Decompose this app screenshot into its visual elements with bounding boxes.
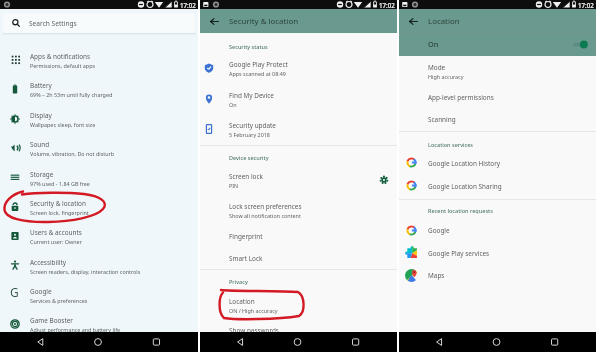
button[interactable]: Storage <box>0 162 198 192</box>
button[interactable]: Accessibility <box>0 251 198 281</box>
button[interactable]: Show passwords <box>200 320 397 342</box>
other: Location toggle <box>568 39 590 50</box>
button[interactable]: Maps <box>399 265 596 288</box>
button[interactable]: Search Settings <box>3 13 195 33</box>
button[interactable]: Screen lock <box>200 165 397 195</box>
staticText: Game Booster <box>30 316 73 325</box>
staticText: ON / High accuracy <box>229 307 278 314</box>
staticText: Adjust performance and battery life <box>30 326 121 333</box>
staticText: Scanning <box>428 115 456 124</box>
staticText: Sound <box>30 140 50 149</box>
button[interactable]: Lock screen preferences <box>200 195 397 225</box>
staticText: Device security <box>229 154 269 161</box>
staticText: On <box>428 39 439 49</box>
staticText: Volume, vibration, Do not disturb <box>30 150 115 157</box>
staticText: Security update <box>229 121 276 130</box>
staticText: Smart Lock <box>229 254 263 263</box>
button[interactable]: Sound <box>0 133 198 163</box>
staticText: 17:02 <box>180 1 196 9</box>
button[interactable]: Google Location Sharing <box>399 175 596 198</box>
staticText: Screen lock, fingerprint <box>30 209 89 216</box>
staticText: Maps <box>428 271 445 280</box>
staticText: Apps & notifications <box>30 52 91 61</box>
button[interactable]: Security & location <box>0 192 198 222</box>
staticText: Screen lock <box>229 172 263 181</box>
staticText: Lock screen preferences <box>229 202 302 211</box>
staticText: Show passwords <box>229 326 279 335</box>
staticText: Google Location History <box>428 159 501 168</box>
staticText: On <box>229 101 237 108</box>
staticText: Location <box>428 16 460 27</box>
button[interactable]: Scanning <box>399 108 596 130</box>
staticText: Location services <box>428 141 474 148</box>
staticText: Apps scanned at 08:49 <box>229 70 286 77</box>
button[interactable]: Apps & notifications <box>0 44 198 74</box>
button[interactable]: Recent apps <box>132 332 198 352</box>
button[interactable]: Security update <box>200 114 397 144</box>
staticText: Wallpaper, sleep, font size <box>30 121 96 128</box>
button[interactable]: Back <box>200 332 266 352</box>
staticText: Permissions, default apps <box>30 62 96 69</box>
staticText: Display <box>30 111 52 120</box>
staticText: Search Settings <box>29 19 77 28</box>
button[interactable]: On <box>399 34 596 56</box>
staticText: G <box>10 284 19 300</box>
other: Back <box>407 15 419 27</box>
staticText: 5 February 2018 <box>229 131 270 138</box>
button[interactable]: Fingerprint <box>200 225 397 247</box>
button[interactable]: Google <box>399 219 596 242</box>
staticText: Mode <box>428 63 446 72</box>
staticText: Privacy <box>229 278 248 285</box>
button[interactable]: Location <box>200 290 397 320</box>
staticText: 69% – 2h 53m until fully charged <box>30 91 113 98</box>
button[interactable]: Back <box>399 9 596 33</box>
button[interactable]: Home <box>266 332 332 352</box>
staticText: Users & accounts <box>30 228 82 237</box>
staticText: Show all notification content <box>229 212 301 219</box>
staticText: Google <box>30 287 52 296</box>
staticText: Accessibility <box>30 258 67 267</box>
staticText: Storage <box>30 170 54 179</box>
button[interactable]: App-level permissions <box>399 86 596 108</box>
staticText: Security & location <box>30 199 86 208</box>
staticText: Screen readers, display, interaction con… <box>30 268 141 275</box>
other: Back <box>208 15 220 27</box>
staticText: Security status <box>229 43 268 50</box>
button[interactable]: Google <box>0 280 198 310</box>
staticText: Current user: Owner <box>30 238 82 245</box>
staticText: Location <box>229 297 255 306</box>
button[interactable]: Game Booster <box>0 310 198 340</box>
button[interactable]: Back <box>399 332 465 352</box>
button[interactable]: Google Play Protect <box>200 53 397 83</box>
button[interactable]: Display <box>0 103 198 133</box>
button[interactable]: Back <box>200 9 397 33</box>
button[interactable]: Google Play services <box>399 242 596 265</box>
staticText: High accuracy <box>428 73 464 80</box>
staticText: Google <box>428 226 450 235</box>
staticText: Fingerprint <box>229 232 263 241</box>
staticText: Recent location requests <box>428 207 493 214</box>
button[interactable]: Battery <box>0 74 198 104</box>
staticText: 97% used - 1.84 GB free <box>30 180 90 187</box>
button[interactable]: Home <box>465 332 531 352</box>
staticText: Google Play Protect <box>229 60 288 69</box>
button[interactable]: Home <box>66 332 132 352</box>
staticText: 17:02 <box>578 1 594 9</box>
button[interactable]: Google Location History <box>399 152 596 175</box>
staticText: App-level permissions <box>428 93 494 102</box>
staticText: Battery <box>30 81 52 90</box>
button[interactable]: Mode <box>399 56 596 86</box>
button[interactable]: Find My Device <box>200 83 397 113</box>
button[interactable]: Back <box>0 332 66 352</box>
staticText: Services & preferences <box>30 297 88 304</box>
staticText: Security & location <box>229 16 299 27</box>
button[interactable]: Recent apps <box>332 332 398 352</box>
staticText: Google Play services <box>428 249 490 258</box>
staticText: PIN <box>229 182 239 189</box>
button[interactable]: Recent apps <box>531 332 596 352</box>
staticText: Google Location Sharing <box>428 182 502 191</box>
staticText: 17:02 <box>379 1 395 9</box>
staticText: Find My Device <box>229 91 274 100</box>
button[interactable]: Smart Lock <box>200 247 397 269</box>
button[interactable]: Users & accounts <box>0 221 198 251</box>
